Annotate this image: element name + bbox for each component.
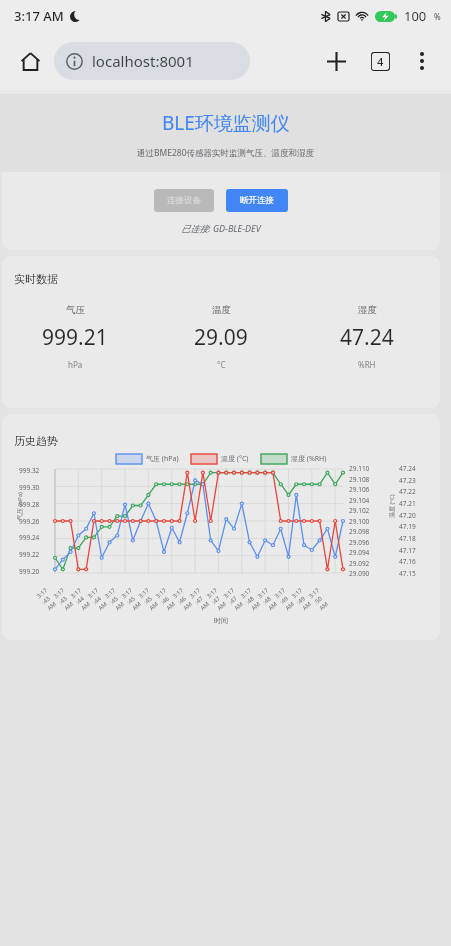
staticText: 47.20 — [399, 511, 416, 520]
staticText: 29.092 — [349, 559, 370, 568]
staticText: 4 — [377, 54, 384, 69]
staticText: hPa — [68, 359, 83, 370]
staticText: 3:17:45 AM — [103, 586, 128, 612]
staticText: 3:17:49 AM — [290, 586, 315, 612]
staticText: 3:17:43 AM — [35, 586, 60, 612]
staticText: 3:17:44 AM — [69, 586, 94, 612]
staticText: 47.24 — [340, 323, 394, 352]
staticText: 3:17:45 AM — [137, 586, 162, 612]
staticText: 29.108 — [349, 475, 370, 484]
staticText: 999.20 — [19, 567, 40, 576]
staticText: 29.102 — [349, 506, 370, 515]
staticText: 29.094 — [349, 548, 370, 557]
staticText: % — [434, 11, 441, 22]
staticText: 实时数据 — [14, 272, 58, 286]
staticText: 3:17:44 AM — [86, 586, 111, 612]
staticText: 29.096 — [349, 538, 370, 547]
button[interactable]: More options — [403, 42, 441, 80]
staticText: 47.19 — [399, 522, 416, 531]
staticText: 3:17:50 AM — [307, 586, 332, 612]
button[interactable]: 断开连接 — [226, 189, 288, 212]
staticText: 3:17:43 AM — [52, 586, 77, 612]
staticText: 999.32 — [19, 466, 40, 475]
staticText: 温度 (°C) — [221, 454, 249, 464]
staticText: 气压 (hPa) — [146, 454, 179, 464]
staticText: %RH — [358, 359, 376, 370]
staticText: 湿度 — [358, 304, 377, 316]
staticText: 999.26 — [19, 517, 40, 526]
staticText: 29.104 — [349, 496, 370, 505]
staticText: 999.28 — [19, 500, 40, 509]
button[interactable]: Home — [10, 41, 50, 81]
staticText: 29.090 — [349, 569, 370, 578]
button[interactable]: New tab — [317, 42, 355, 80]
staticText: 29.09 — [194, 323, 248, 352]
staticText: 29.106 — [349, 485, 370, 494]
staticText: 历史趋势 — [14, 434, 58, 448]
staticText: BLE环境监测仪 — [162, 110, 290, 136]
staticText: 29.100 — [349, 517, 370, 526]
staticText: 3:17:46 AM — [154, 586, 179, 612]
staticText: 3:17:45 AM — [120, 586, 145, 612]
staticText: 29.098 — [349, 527, 370, 536]
staticText: 3:17:49 AM — [273, 586, 298, 612]
staticText: 连接设备 — [167, 195, 201, 206]
staticText: 温度 — [212, 304, 231, 316]
staticText: 断开连接 — [240, 195, 274, 206]
button[interactable]: localhost:8001 — [54, 42, 250, 80]
staticText: 29.110 — [349, 464, 370, 473]
staticText: localhost:8001 — [92, 51, 194, 71]
button[interactable]: 连接设备 — [154, 189, 214, 212]
staticText: 999.21 — [42, 323, 108, 352]
staticText: 999.30 — [19, 483, 40, 492]
staticText: 气压 (hPa) — [16, 492, 24, 520]
staticText: 湿度 (%RH) — [291, 454, 327, 464]
staticText: 47.17 — [399, 546, 416, 555]
staticText: 温度 (°C) — [388, 494, 396, 518]
staticText: 3:17:48 AM — [239, 586, 264, 612]
staticText: 3:17:47 AM — [188, 586, 213, 612]
staticText: 47.24 — [399, 464, 416, 473]
staticText: 3:17:48 AM — [256, 586, 281, 612]
staticText: 3:17:47 AM — [222, 586, 247, 612]
staticText: 999.22 — [19, 550, 40, 559]
staticText: 气压 — [66, 304, 85, 316]
staticText: 3:17:46 AM — [171, 586, 196, 612]
staticText: 47.18 — [399, 534, 416, 543]
staticText: 47.15 — [399, 569, 416, 578]
staticText: 47.21 — [399, 499, 416, 508]
staticText: 3:17:47 AM — [205, 586, 230, 612]
staticText: °C — [217, 359, 226, 370]
staticText: 47.16 — [399, 557, 416, 566]
button[interactable]: Tabs: 4 open — [361, 42, 399, 80]
staticText: 3:17 AM — [14, 7, 64, 25]
staticText: 时间 — [214, 616, 228, 625]
staticText: 100 — [404, 7, 427, 25]
staticText: 47.23 — [399, 476, 416, 485]
staticText: 999.24 — [19, 533, 40, 542]
staticText: 通过BME280传感器实时监测气压、温度和湿度 — [137, 147, 315, 159]
staticText: 已连接: GD-BLE-DEV — [181, 222, 261, 234]
staticText: 47.22 — [399, 487, 416, 496]
